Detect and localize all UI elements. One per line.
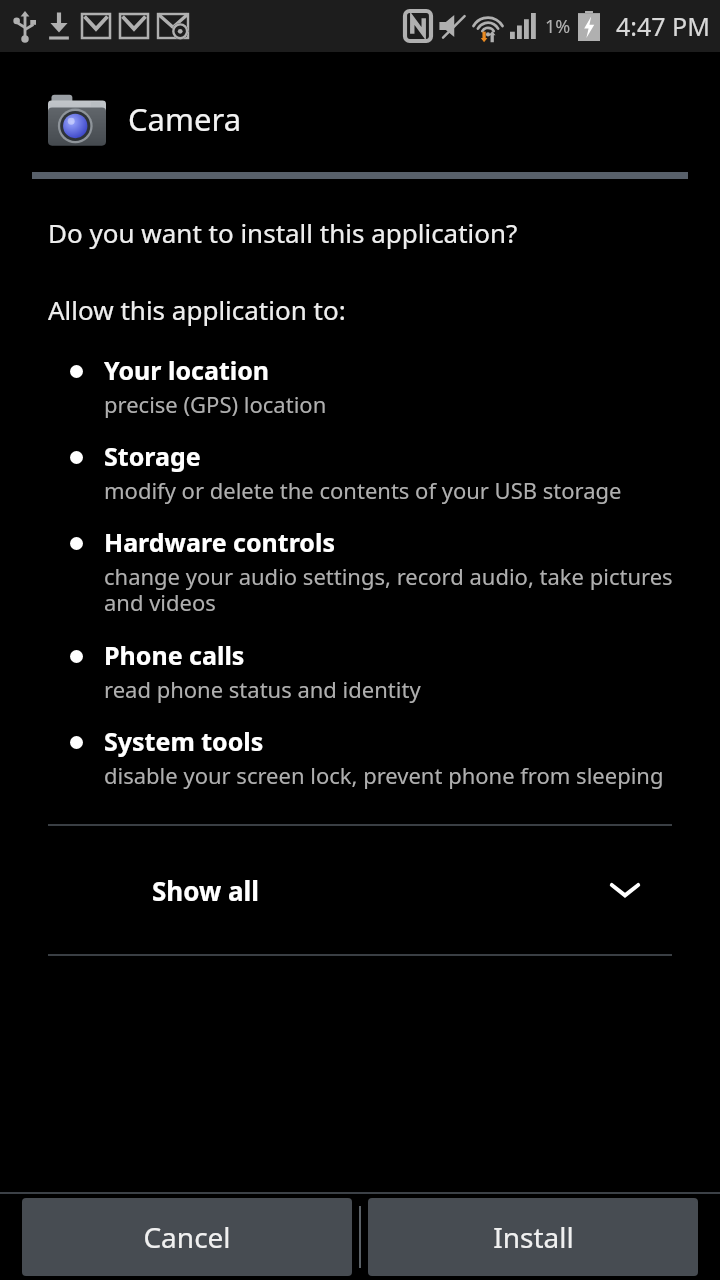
staticText: change your audio settings, record audio… [104,561,676,618]
other: Show all permissions [610,881,640,899]
button[interactable]: Install [368,1198,698,1276]
staticText: Camera [128,98,242,140]
staticText: modify or delete the contents of your US… [104,475,622,505]
button[interactable]: System tools [0,714,720,800]
button[interactable]: Show all [0,826,720,954]
staticText: Install [493,1218,574,1256]
button[interactable]: Storage [0,429,720,515]
staticText: 4:47 PM [616,9,710,43]
staticText: Phone calls [104,638,245,672]
staticText: 1% [545,14,571,39]
staticText: Do you want to install this application? [48,215,518,250]
staticText: read phone status and identity [104,674,421,704]
staticText: Cancel [143,1218,231,1256]
staticText: precise (GPS) location [104,389,327,419]
staticText: Storage [104,439,201,473]
staticText: Show all [152,873,260,908]
button[interactable]: Phone calls [0,628,720,714]
button[interactable]: Your location [0,343,720,429]
staticText: Your location [104,353,270,387]
button[interactable]: Hardware controls [0,515,720,628]
staticText: Allow this application to: [48,292,346,327]
staticText: Hardware controls [104,525,335,559]
staticText: System tools [104,724,264,758]
staticText: disable your screen lock, prevent phone … [104,760,664,790]
button[interactable]: Cancel [22,1198,352,1276]
